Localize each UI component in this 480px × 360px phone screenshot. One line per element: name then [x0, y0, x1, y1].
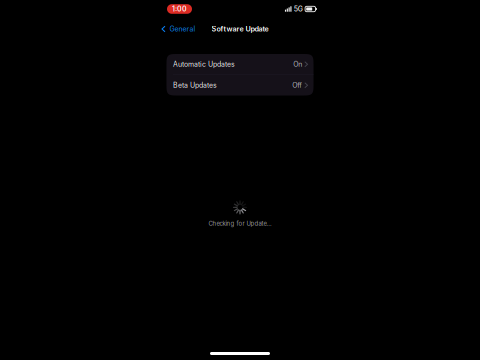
staticText: Beta Updates: [173, 81, 217, 89]
staticText: General: [169, 25, 195, 33]
button[interactable]: Automatic Updates: [166, 54, 313, 74]
staticText: Off: [292, 81, 302, 89]
button[interactable]: Beta Updates: [166, 75, 313, 95]
staticText: Software Update: [211, 25, 268, 33]
staticText: Checking for Update…: [208, 220, 271, 227]
staticText: 5G: [294, 5, 303, 13]
staticText: 1:00: [172, 5, 187, 13]
button[interactable]: General: [159, 22, 198, 36]
staticText: Automatic Updates: [173, 60, 235, 68]
staticText: On: [293, 60, 302, 68]
